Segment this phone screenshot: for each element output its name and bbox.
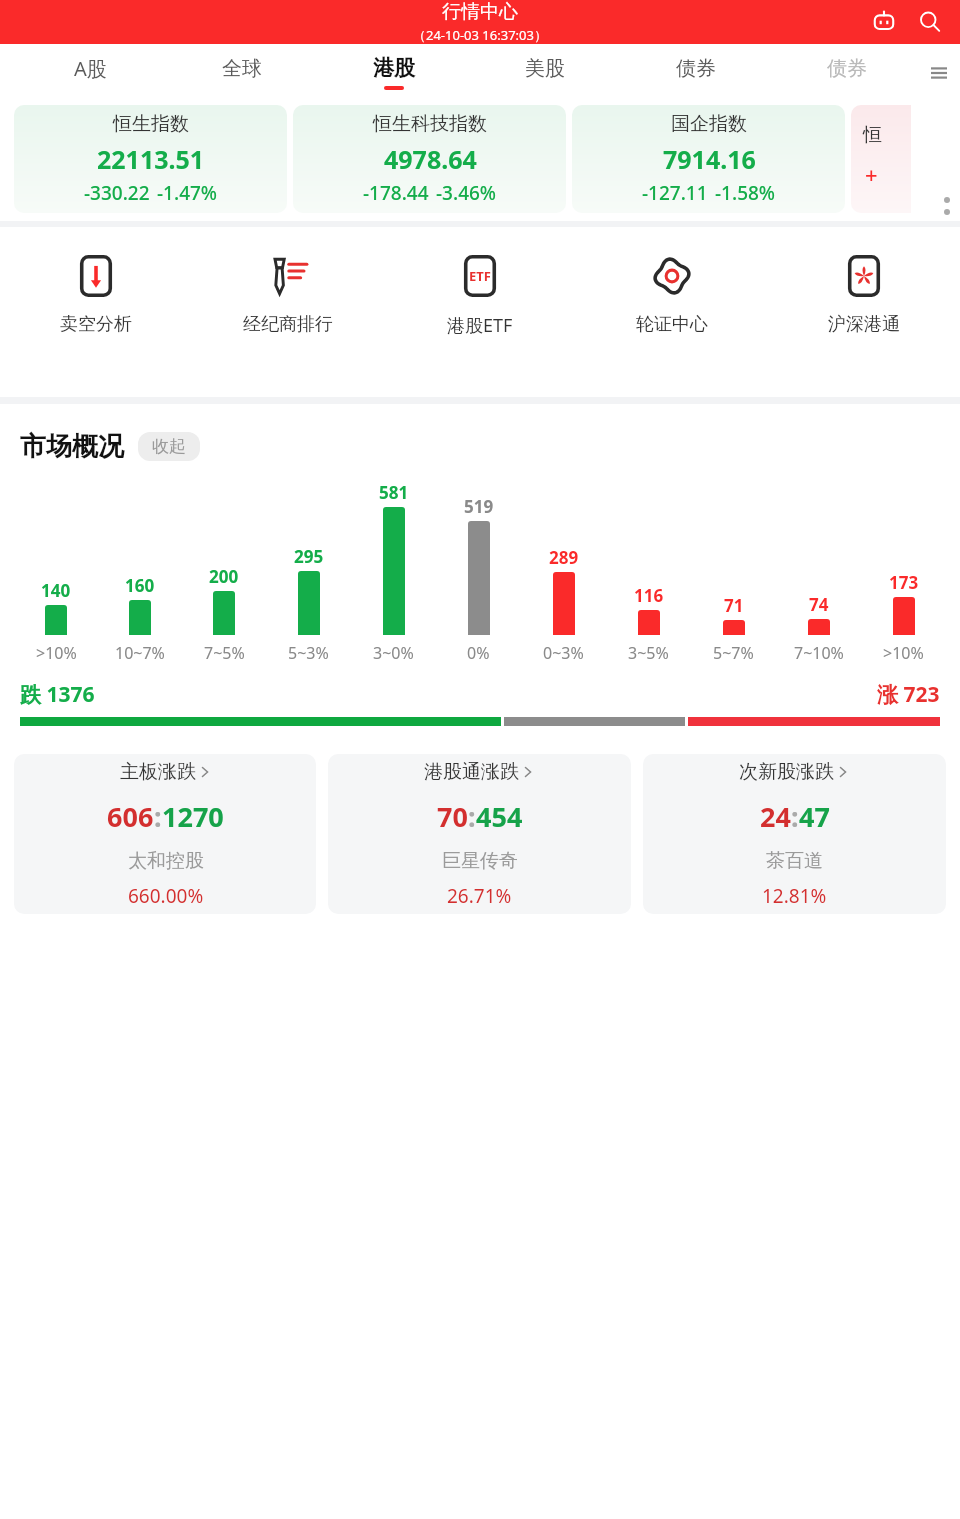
staticText: 轮证中心 — [636, 313, 708, 336]
staticText: 7914.16 — [663, 142, 756, 176]
staticText: 债券 — [676, 56, 716, 81]
staticText: 港股通涨跌 — [424, 760, 519, 784]
staticText: 289 — [549, 546, 579, 569]
staticText: 3~0% — [373, 642, 414, 664]
staticText: 3~5% — [628, 642, 669, 664]
button[interactable]: 恒生科技指数 — [293, 105, 566, 213]
staticText: 519 — [464, 495, 494, 518]
staticText: 116 — [634, 584, 664, 607]
staticText: 200 — [209, 565, 239, 588]
staticText: 跌 1376 — [20, 680, 95, 709]
button[interactable]: 全球 — [166, 44, 318, 101]
staticText: A股 — [74, 55, 107, 82]
staticText: 295 — [294, 545, 324, 568]
staticText: 7~10% — [794, 642, 844, 664]
staticText: >10% — [883, 642, 924, 664]
staticText: 454 — [476, 798, 523, 835]
staticText: 沪深港通 — [828, 313, 900, 336]
staticText: 全球 — [222, 56, 262, 81]
staticText: : — [791, 798, 799, 835]
staticText: 国企指数 — [671, 112, 747, 136]
button[interactable]: 国企指数 — [572, 105, 845, 213]
staticText: 22113.51 — [97, 142, 205, 176]
staticText: 5~7% — [713, 642, 754, 664]
staticText: 巨星传奇 — [442, 849, 518, 873]
button[interactable]: More tabs — [922, 44, 956, 101]
button[interactable]: 美股 — [469, 44, 620, 101]
staticText: : — [154, 798, 162, 835]
button[interactable]: 债券 — [620, 44, 771, 101]
button[interactable]: 港股 — [318, 44, 469, 101]
staticText: 70 — [437, 798, 468, 835]
staticText: ETF — [469, 267, 491, 285]
staticText: 74 — [809, 593, 829, 616]
staticText: 港股ETF — [447, 313, 513, 338]
staticText: -1.47% — [157, 180, 218, 206]
button[interactable]: 次新股涨跌 — [643, 754, 946, 914]
staticText: 主板涨跌 — [120, 760, 196, 784]
staticText: 173 — [889, 571, 919, 594]
staticText: 0% — [467, 642, 490, 664]
staticText: 债券 — [827, 56, 867, 81]
staticText: 市场概况 — [20, 430, 124, 463]
staticText: -330.22 — [84, 180, 150, 206]
button[interactable]: More indices — [934, 181, 960, 243]
button[interactable]: 债券 — [771, 44, 922, 101]
button[interactable]: 恒 — [851, 105, 911, 213]
staticText: 7~5% — [204, 642, 245, 664]
staticText: 港股 — [373, 55, 415, 81]
staticText: 恒生指数 — [113, 112, 189, 136]
staticText: 1270 — [162, 798, 224, 835]
staticText: 恒生科技指数 — [373, 112, 487, 136]
staticText: 5~3% — [288, 642, 329, 664]
staticText: 4978.64 — [384, 142, 477, 176]
staticText: 26.71% — [447, 883, 512, 909]
staticText: 10~7% — [115, 642, 165, 664]
staticText: 47 — [799, 798, 830, 835]
button[interactable]: 卖空分析 — [0, 253, 192, 397]
button[interactable]: 沪深港通 — [768, 253, 960, 397]
staticText: 茶百道 — [766, 849, 823, 873]
staticText: 581 — [379, 481, 409, 504]
staticText: -3.46% — [436, 180, 497, 206]
button[interactable]: 经纪商排行 — [192, 253, 384, 397]
staticText: 涨 723 — [877, 680, 940, 709]
staticText: 经纪商排行 — [243, 313, 333, 336]
button[interactable]: 轮证中心 — [576, 253, 768, 397]
staticText: 收起 — [152, 436, 186, 457]
staticText: 160 — [125, 574, 155, 597]
button[interactable]: 港股通涨跌 — [328, 754, 631, 914]
staticText: 660.00% — [128, 883, 204, 909]
staticText: 次新股涨跌 — [739, 760, 834, 784]
staticText: 24 — [760, 798, 791, 835]
button[interactable]: Robot assistant — [866, 4, 902, 40]
staticText: 140 — [41, 579, 71, 602]
staticText: 恒 — [863, 123, 882, 147]
staticText: 卖空分析 — [60, 313, 132, 336]
staticText: 606 — [107, 798, 154, 835]
staticText: >10% — [36, 642, 77, 664]
staticText: : — [468, 798, 476, 835]
button[interactable]: Search — [912, 4, 948, 40]
staticText: 行情中心 — [442, 0, 518, 24]
button[interactable]: 恒生指数 — [14, 105, 287, 213]
staticText: 12.81% — [762, 883, 827, 909]
button[interactable]: A股 — [14, 44, 166, 101]
staticText: 71 — [724, 594, 744, 617]
staticText: 美股 — [525, 56, 565, 81]
staticText: （24-10-03 16:37:03） — [413, 26, 547, 44]
staticText: 太和控股 — [128, 849, 204, 873]
button[interactable]: ETF — [384, 253, 576, 397]
staticText: -127.11 — [642, 180, 708, 206]
button[interactable]: 收起 — [138, 432, 200, 461]
button[interactable]: 主板涨跌 — [14, 754, 316, 914]
staticText: -178.44 — [363, 180, 429, 206]
staticText: 0~3% — [543, 642, 584, 664]
staticText: -1.58% — [715, 180, 776, 206]
staticText: + — [865, 159, 878, 189]
